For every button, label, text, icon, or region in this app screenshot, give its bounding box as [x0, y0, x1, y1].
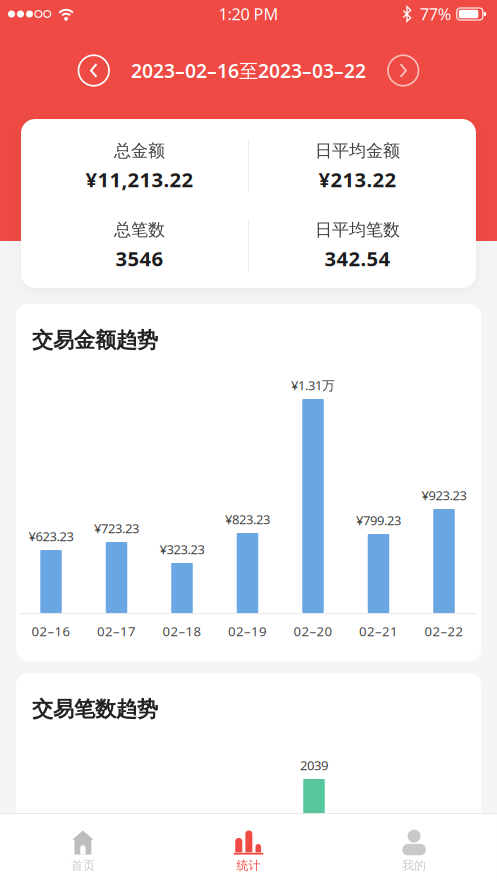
- staticText: 2023–02–16至2023–03–22: [131, 57, 366, 84]
- staticText: 总金额: [114, 140, 165, 161]
- staticText: 342.54: [324, 245, 390, 272]
- staticText: ¥923.23: [421, 486, 466, 504]
- staticText: 统计: [236, 858, 260, 873]
- staticText: 交易金额趋势: [32, 327, 158, 353]
- staticText: 交易笔数趋势: [32, 696, 158, 722]
- staticText: ¥723.23: [94, 519, 139, 537]
- staticText: 日平均笔数: [315, 219, 400, 241]
- staticText: 3546: [115, 245, 163, 272]
- staticText: 02–17: [97, 622, 136, 640]
- staticText: 02–22: [424, 622, 463, 640]
- staticText: 02–21: [359, 622, 398, 640]
- staticText: 日平均金额: [315, 140, 400, 161]
- staticText: 首页: [71, 858, 95, 873]
- staticText: 总笔数: [114, 219, 165, 241]
- button[interactable]: Previous period: [78, 55, 109, 86]
- staticText: 1:20 PM: [218, 3, 278, 25]
- staticText: 02–19: [228, 622, 267, 640]
- staticText: ¥323.23: [159, 540, 204, 558]
- button[interactable]: 我的: [331, 814, 497, 883]
- staticText: ¥213.22: [318, 165, 396, 193]
- staticText: ¥1.31万: [291, 376, 335, 394]
- staticText: 2039: [300, 756, 328, 774]
- button[interactable]: 首页: [0, 814, 166, 883]
- staticText: ¥799.23: [356, 511, 401, 529]
- button[interactable]: 统计: [166, 814, 331, 883]
- button[interactable]: Next period: [388, 55, 418, 86]
- staticText: ¥623.23: [28, 527, 73, 545]
- staticText: ¥823.23: [225, 510, 270, 528]
- staticText: 02–18: [162, 622, 201, 640]
- staticText: ¥11,213.22: [85, 165, 193, 193]
- staticText: 77%: [420, 3, 452, 25]
- staticText: 02–20: [293, 622, 332, 640]
- staticText: 02–16: [31, 622, 70, 640]
- staticText: 我的: [402, 858, 426, 873]
